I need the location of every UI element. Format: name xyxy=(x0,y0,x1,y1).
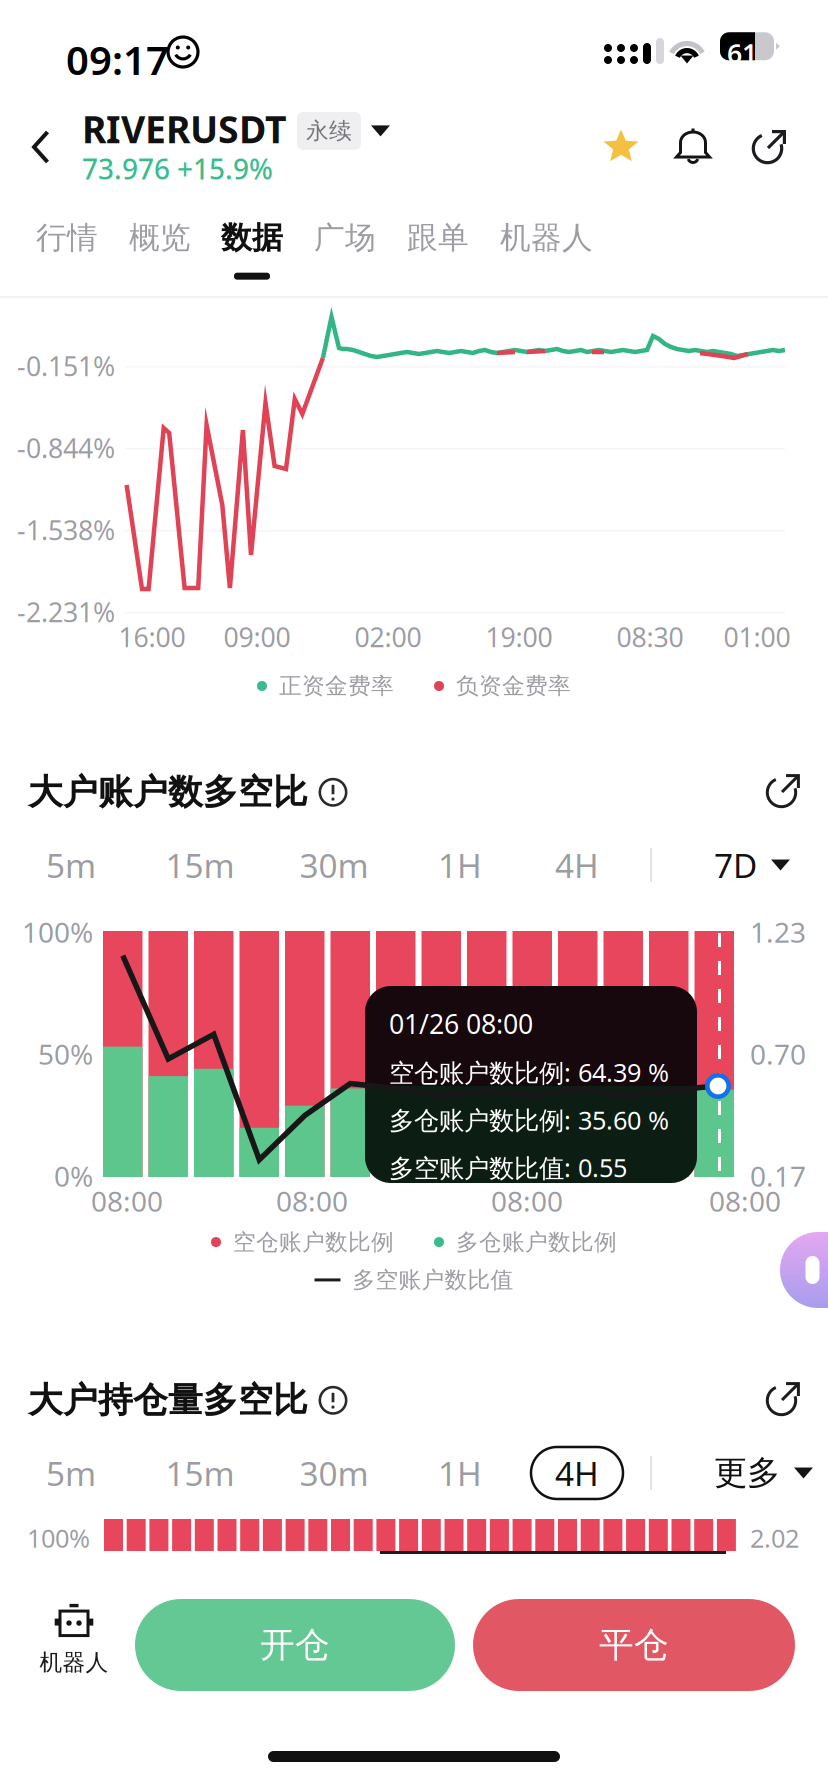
button[interactable]: 行情 xyxy=(26,219,108,291)
button[interactable]: 5m xyxy=(25,1447,117,1499)
staticText: 1H xyxy=(438,843,482,887)
staticText: 30m xyxy=(299,1451,368,1495)
staticText: 0% xyxy=(54,1157,93,1195)
staticText: 1H xyxy=(438,1451,482,1495)
button[interactable]: Back xyxy=(8,102,74,192)
staticText: 73.976 +15.9% xyxy=(82,150,273,187)
button[interactable]: 15m xyxy=(154,839,246,891)
staticText: 100% xyxy=(27,1521,90,1555)
staticText: 19:00 xyxy=(485,619,552,655)
staticText: 4H xyxy=(555,843,599,887)
button[interactable]: Share chart xyxy=(760,1375,806,1421)
staticText: 09:17 xyxy=(66,33,169,86)
staticText: 行情 xyxy=(36,219,98,257)
staticText: 15m xyxy=(165,843,234,887)
staticText: 空仓账户数比例: 64.39 % xyxy=(389,1055,669,1089)
staticText: 多空账户数比值: 0.55 xyxy=(389,1151,627,1184)
staticText: 5m xyxy=(46,1451,96,1495)
staticText: -0.151% xyxy=(17,348,115,384)
staticText: 广场 xyxy=(314,219,376,257)
staticText: 01:00 xyxy=(723,619,790,655)
staticText: 4H xyxy=(555,1451,599,1495)
staticText: 08:30 xyxy=(616,619,683,655)
staticText: -0.844% xyxy=(17,430,115,466)
staticText: 更多 xyxy=(714,1452,780,1493)
button[interactable]: Contract type xyxy=(297,112,390,150)
button[interactable]: 5m xyxy=(25,839,117,891)
button[interactable]: 30m xyxy=(288,1447,380,1499)
staticText: -1.538% xyxy=(17,512,115,548)
staticText: 5m xyxy=(46,843,96,887)
staticText: RIVERUSDT xyxy=(82,104,287,154)
button[interactable]: Favorite xyxy=(593,119,649,175)
button[interactable]: 15m xyxy=(154,1447,246,1499)
button[interactable]: Share xyxy=(741,118,797,174)
staticText: 2.02 xyxy=(750,1521,799,1555)
staticText: 机器人 xyxy=(500,219,593,257)
staticText: 永续 xyxy=(306,117,352,145)
staticText: 机器人 xyxy=(39,1649,108,1676)
staticText: 0.70 xyxy=(750,1035,806,1073)
button[interactable]: Assistant xyxy=(780,1232,828,1308)
staticText: 09:00 xyxy=(223,619,290,655)
staticText: 7D xyxy=(714,843,757,887)
staticText: 负资金费率 xyxy=(456,672,571,700)
staticText: 数据 xyxy=(221,219,283,257)
button[interactable]: 概览 xyxy=(119,219,201,291)
staticText: 开仓 xyxy=(260,1624,330,1666)
button[interactable]: More periods xyxy=(714,1447,813,1499)
staticText: -2.231% xyxy=(17,594,115,630)
staticText: 08:00 xyxy=(91,1182,163,1220)
staticText: 100% xyxy=(22,913,93,951)
staticText: 1.23 xyxy=(750,913,806,951)
staticText: 08:00 xyxy=(709,1182,781,1220)
staticText: 概览 xyxy=(129,219,191,257)
staticText: 30m xyxy=(299,843,368,887)
button[interactable]: 跟单 xyxy=(397,219,479,291)
button[interactable]: 1H xyxy=(414,1447,506,1499)
button[interactable]: 开仓 xyxy=(135,1599,455,1691)
staticText: 平仓 xyxy=(599,1624,669,1666)
staticText: 空仓账户数比例 xyxy=(233,1228,394,1256)
button[interactable]: 机器人 xyxy=(490,219,603,291)
button[interactable]: 平仓 xyxy=(473,1599,795,1691)
staticText: 02:00 xyxy=(354,619,421,655)
staticText: 多仓账户数比例 xyxy=(456,1228,617,1256)
staticText: 50% xyxy=(38,1035,93,1073)
button[interactable]: 1H xyxy=(414,839,506,891)
staticText: 0.17 xyxy=(750,1157,806,1195)
button[interactable]: 4H xyxy=(531,839,623,891)
staticText: 01/26 08:00 xyxy=(389,1006,533,1041)
staticText: 多仓账户数比例: 35.60 % xyxy=(389,1103,669,1137)
button[interactable]: More periods xyxy=(714,839,790,891)
button[interactable]: Trading bot xyxy=(24,1597,124,1683)
staticText: 正资金费率 xyxy=(279,672,394,700)
staticText: 08:00 xyxy=(276,1182,348,1220)
staticText: 大户账户数多空比 xyxy=(28,771,308,814)
staticText: 61 xyxy=(727,35,757,71)
button[interactable]: 数据 xyxy=(211,219,293,291)
staticText: 跟单 xyxy=(407,219,469,257)
staticText: 15m xyxy=(165,1451,234,1495)
button[interactable]: Alerts xyxy=(665,118,721,174)
staticText: 16:00 xyxy=(118,619,185,655)
button[interactable]: 30m xyxy=(288,839,380,891)
staticText: 08:00 xyxy=(491,1182,563,1220)
button[interactable]: Share chart xyxy=(760,767,806,813)
staticText: 大户持仓量多空比 xyxy=(28,1379,308,1422)
button[interactable]: 4H xyxy=(531,1447,623,1499)
staticText: 多空账户数比值 xyxy=(352,1266,513,1294)
button[interactable]: 广场 xyxy=(304,219,386,291)
